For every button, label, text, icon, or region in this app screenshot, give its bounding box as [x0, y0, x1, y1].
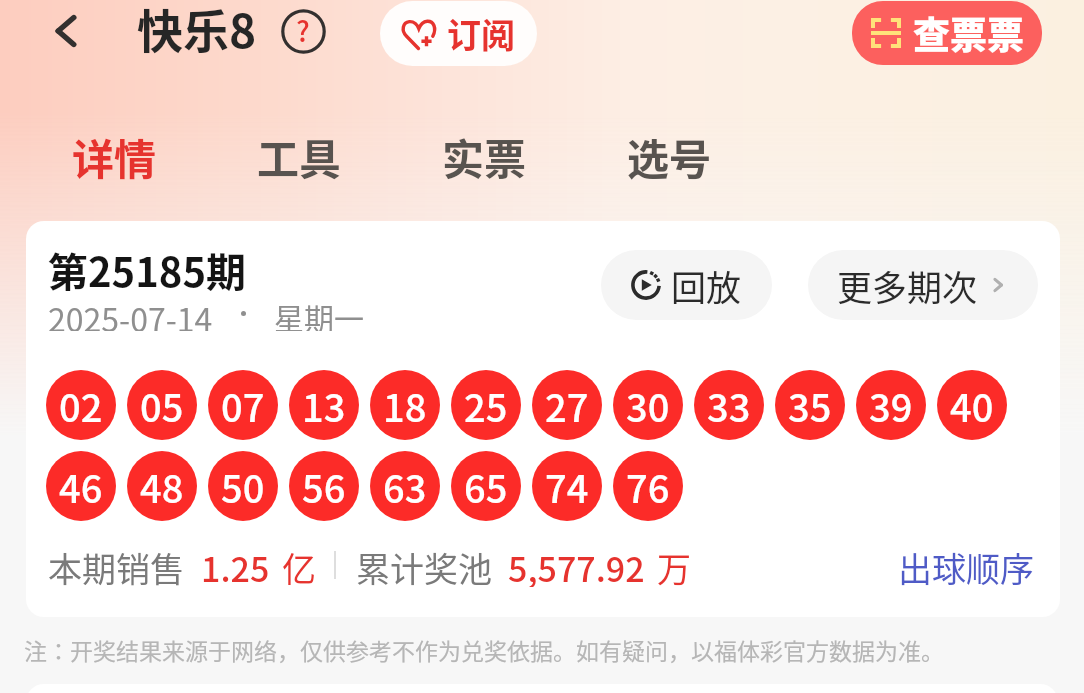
staticText: 本期销售	[48, 543, 184, 587]
button[interactable]: 查票票	[852, 1, 1042, 65]
button[interactable]: Help	[277, 5, 329, 57]
staticText: 出球顺序	[898, 543, 1034, 587]
staticText: 56	[302, 459, 346, 514]
staticText: 1.25	[201, 543, 270, 587]
staticText: 选号	[627, 126, 712, 187]
staticText: 07	[221, 378, 265, 433]
staticText: 48	[140, 459, 184, 514]
staticText: 5,577.92	[508, 543, 645, 587]
staticText: 更多期次	[837, 260, 978, 311]
staticText: 18	[383, 378, 427, 433]
staticText: 30	[626, 378, 670, 433]
button[interactable]: 出球顺序	[898, 543, 1034, 587]
staticText: 02	[59, 378, 103, 433]
staticText: ?	[296, 10, 310, 51]
button[interactable]: 详情	[54, 125, 174, 187]
staticText: 13	[302, 378, 346, 433]
staticText: 74	[545, 459, 589, 514]
staticText: 76	[626, 459, 670, 514]
button[interactable]: 实票	[424, 125, 544, 187]
staticText: 快乐8	[137, 0, 257, 59]
staticText: 40	[950, 378, 994, 433]
staticText: 工具	[257, 126, 342, 187]
staticText: 33	[707, 378, 751, 433]
staticText: 27	[545, 378, 589, 433]
staticText: 查票票	[913, 6, 1024, 60]
staticText: 65	[464, 459, 508, 514]
staticText: 注：开奖结果来源于网络，仅供参考不作为兑奖依据。如有疑问，以福体彩官方数据为准。	[24, 633, 944, 665]
staticText: 05	[140, 378, 184, 433]
staticText: 46	[59, 459, 103, 514]
staticText: 50	[221, 459, 265, 514]
button[interactable]: 更多期次	[808, 250, 1038, 320]
staticText: 63	[383, 459, 427, 514]
staticText: 2025-07-14	[48, 295, 213, 331]
staticText: 实票	[442, 126, 527, 187]
staticText: 万	[657, 543, 691, 587]
staticText: 详情	[72, 126, 157, 187]
staticText: 第25185期	[48, 241, 246, 291]
button[interactable]: 工具	[239, 125, 359, 187]
staticText: 35	[788, 378, 832, 433]
button[interactable]: Back	[40, 5, 92, 57]
button[interactable]: 选号	[609, 125, 729, 187]
button[interactable]: 订阅	[380, 1, 537, 66]
staticText: 亿	[282, 543, 316, 587]
staticText: 星期一	[274, 295, 364, 331]
staticText: 订阅	[447, 9, 515, 58]
staticText: 回放	[671, 260, 742, 311]
staticText: 25	[464, 378, 508, 433]
button[interactable]: 回放	[601, 250, 772, 320]
staticText: 累计奖池	[356, 543, 492, 587]
staticText: 39	[869, 378, 913, 433]
